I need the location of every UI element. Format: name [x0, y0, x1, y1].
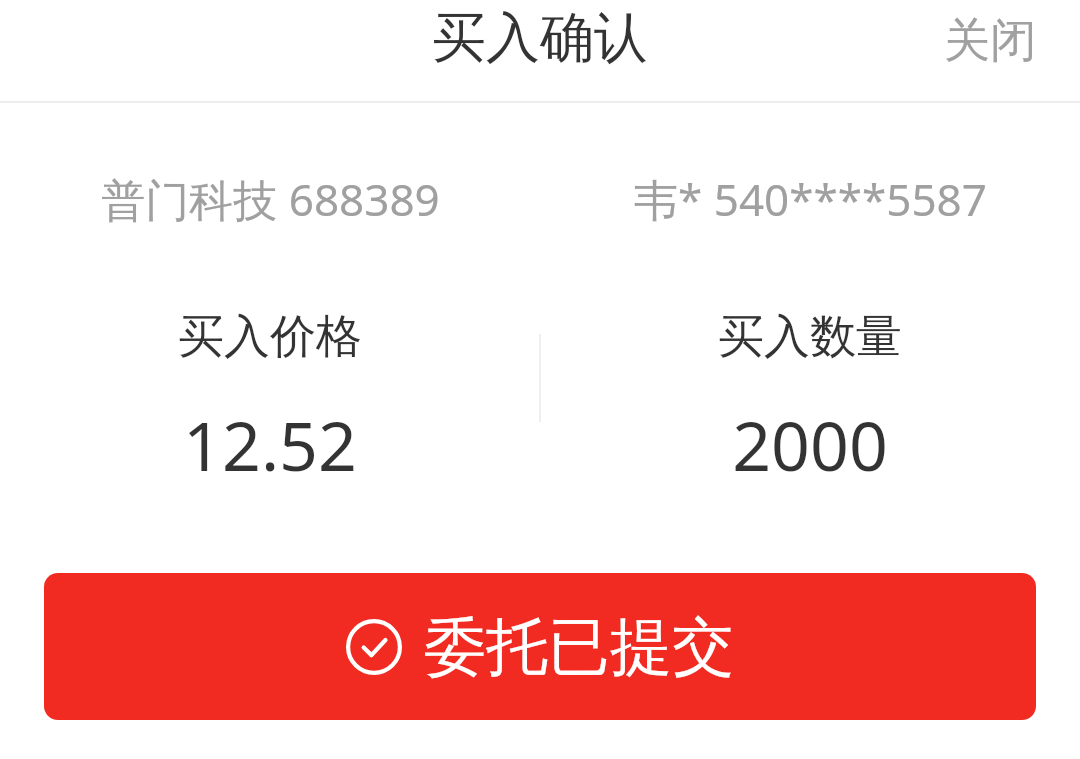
- staticText: 委托已提交: [424, 608, 734, 686]
- staticText: 12.52: [183, 398, 357, 491]
- staticText: 韦* 540****5587: [634, 169, 987, 229]
- button[interactable]: 已提交: [44, 573, 1036, 720]
- staticText: 买入确认: [432, 4, 648, 72]
- other: 已提交: [346, 619, 402, 675]
- button[interactable]: 关闭: [916, 0, 1080, 84]
- staticText: 2000: [732, 398, 888, 491]
- staticText: 普门科技 688389: [101, 169, 440, 229]
- staticText: 买入数量: [718, 308, 902, 366]
- staticText: 关闭: [944, 12, 1036, 70]
- staticText: 买入价格: [178, 308, 362, 366]
